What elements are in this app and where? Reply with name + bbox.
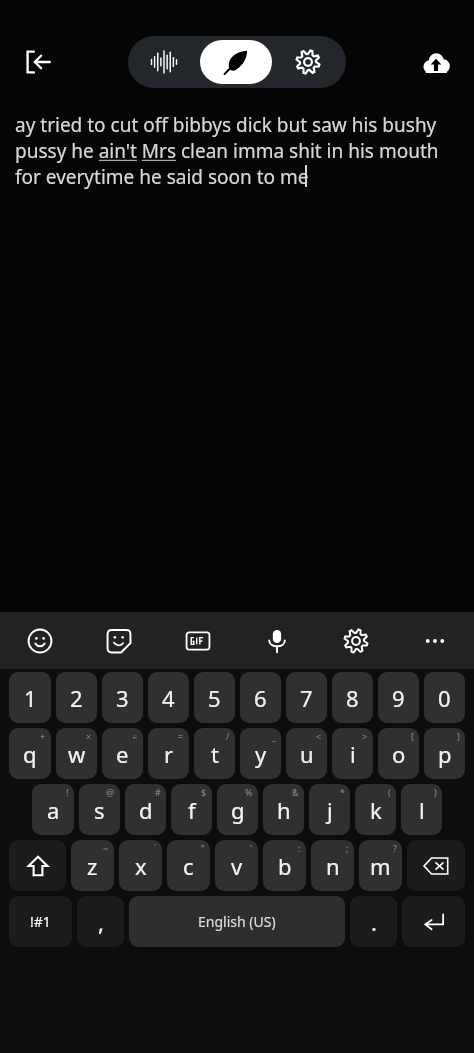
staticText: n [326,851,340,881]
staticText: 9 [392,683,405,713]
button[interactable]: m [359,840,402,891]
staticText: / [226,730,230,742]
staticText: + [40,730,46,742]
staticText: ; [346,842,349,854]
button[interactable]: q [9,728,51,779]
button[interactable]: e [102,728,143,779]
staticText: ! [66,786,69,798]
button[interactable]: a [32,784,74,835]
staticText: f [188,795,196,825]
button[interactable]: 7 [286,672,327,723]
staticText: English (US) [198,912,276,931]
button[interactable]: GIF [158,612,237,669]
button[interactable]: Keyboard settings [316,612,395,669]
staticText: ) [434,786,437,798]
button[interactable]: 1 [9,672,51,723]
staticText: y [255,739,267,769]
staticText: [ [411,730,414,742]
staticText: p [438,739,452,769]
button[interactable]: w [56,728,97,779]
button[interactable]: p [424,728,465,779]
button[interactable]: Voice waveform [128,36,200,88]
staticText: r [164,739,174,769]
button[interactable]: j [309,784,350,835]
staticText: : [298,842,301,854]
staticText: $ [201,786,207,798]
button[interactable]: s [79,784,120,835]
staticText: m [370,851,391,881]
staticText: ( [388,786,391,798]
staticText: d [139,795,153,825]
button[interactable]: 8 [332,672,373,723]
button[interactable]: . [350,896,397,947]
button[interactable]: c [167,840,210,891]
button[interactable]: English (US) [129,896,345,947]
button[interactable]: 2 [56,672,97,723]
button[interactable]: f [171,784,212,835]
staticText: ` [154,842,157,854]
staticText: % [245,786,253,798]
staticText: 0 [438,683,451,713]
button[interactable]: Settings [272,36,344,88]
button[interactable]: Back [12,36,64,88]
button[interactable]: l [401,784,442,835]
button[interactable]: o [378,728,419,779]
staticText: # [155,786,161,798]
button[interactable]: u [286,728,327,779]
button[interactable]: t [194,728,235,779]
staticText: l [419,795,425,825]
staticText: × [86,730,92,742]
staticText: q [23,739,37,769]
button[interactable]: r [148,728,189,779]
button[interactable]: 3 [102,672,143,723]
button[interactable]: b [263,840,306,891]
button[interactable]: Backspace [407,840,465,891]
button[interactable]: , [77,896,124,947]
button[interactable]: Shift [9,840,66,891]
staticText: & [292,786,299,798]
staticText: ÷ [132,730,138,742]
button[interactable]: d [125,784,166,835]
button[interactable]: 9 [378,672,419,723]
button[interactable]: Write [200,40,272,84]
staticText: e [116,739,129,769]
button[interactable]: z [71,840,114,891]
button[interactable]: k [355,784,396,835]
button[interactable]: 6 [240,672,281,723]
staticText: 3 [116,683,129,713]
button[interactable]: g [217,784,258,835]
staticText: " [201,842,205,854]
button[interactable]: h [263,784,304,835]
staticText: 4 [162,683,175,713]
staticText: ] [457,730,460,742]
staticText: 5 [208,683,221,713]
staticText: g [231,795,245,825]
button[interactable]: x [119,840,162,891]
staticText: @ [106,786,115,798]
staticText: x [135,851,147,881]
staticText: b [278,851,292,881]
staticText: , [98,907,104,937]
button[interactable]: 0 [424,672,465,723]
staticText: u [300,739,314,769]
staticText: j [327,795,333,825]
staticText: 2 [70,683,83,713]
button[interactable]: Sticker [79,612,158,669]
button[interactable]: 4 [148,672,189,723]
button[interactable]: v [215,840,258,891]
button[interactable]: 5 [194,672,235,723]
button[interactable]: n [311,840,354,891]
button[interactable]: !#1 [9,896,72,947]
button[interactable]: y [240,728,281,779]
staticText: !#1 [30,912,51,931]
button[interactable]: i [332,728,373,779]
button[interactable]: More options [395,612,474,669]
staticText: * [340,786,345,798]
staticText: 7 [300,683,313,713]
button[interactable]: Enter [402,896,465,947]
staticText: 1 [24,683,37,713]
staticText: w [68,739,86,769]
button[interactable]: Emoji [0,612,79,669]
button[interactable]: Upload to cloud [410,36,462,88]
button[interactable]: Voice input [237,612,316,669]
